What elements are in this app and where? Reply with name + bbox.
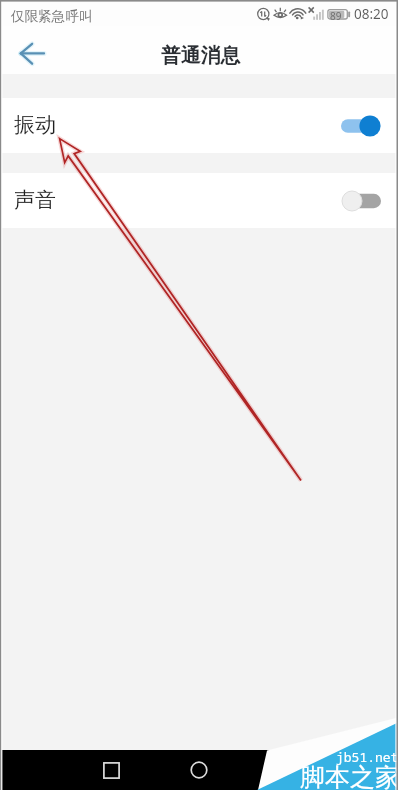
button[interactable]: Home	[180, 751, 218, 789]
button[interactable]: Back	[10, 36, 56, 82]
button[interactable]: Recents	[92, 751, 130, 789]
button[interactable]: 声音	[0, 173, 398, 228]
button[interactable]: 声音 off	[340, 184, 386, 218]
button[interactable]: 振动 on	[340, 109, 386, 143]
staticText: 振动	[14, 112, 56, 138]
staticText: 08:20	[354, 5, 389, 23]
staticText: 89	[330, 9, 342, 23]
staticText: 声音	[14, 187, 56, 213]
staticText: jb51.net	[336, 748, 398, 766]
staticText: 普通消息	[161, 43, 241, 68]
button[interactable]: 振动	[0, 98, 398, 153]
staticText: 脚本之家	[300, 762, 398, 790]
staticText: 仅限紧急呼叫	[11, 8, 93, 25]
